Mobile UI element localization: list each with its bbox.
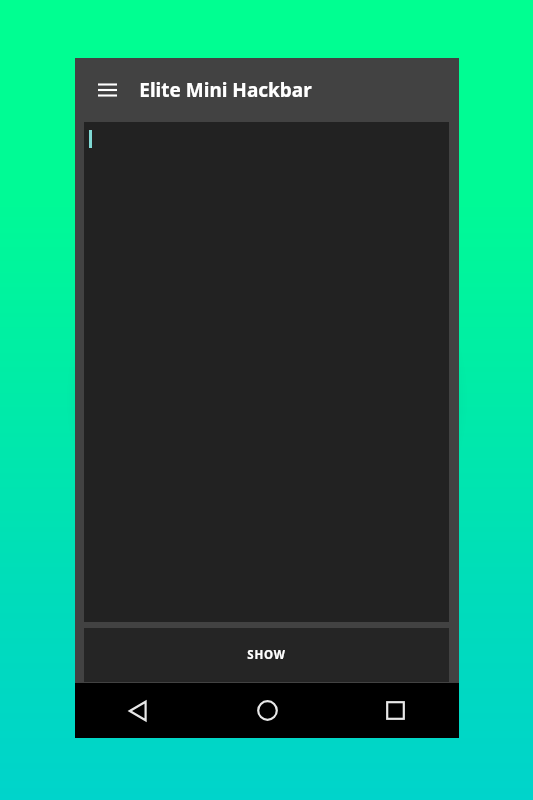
staticText: SHOW <box>247 647 286 663</box>
button[interactable]: Back <box>75 683 203 738</box>
button[interactable]: Open navigation drawer <box>89 72 125 108</box>
button[interactable]: Code editor <box>84 122 449 622</box>
button[interactable]: Recent apps <box>331 683 459 738</box>
button[interactable]: SHOW <box>84 628 449 682</box>
staticText: Elite Mini Hackbar <box>139 77 312 103</box>
button[interactable]: Home <box>203 683 331 738</box>
